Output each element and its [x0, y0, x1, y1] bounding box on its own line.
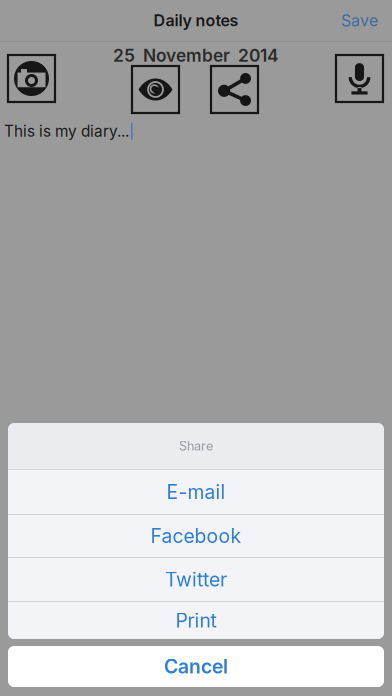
button[interactable]: Twitter [8, 558, 384, 601]
staticText: 25 November 2014 [113, 45, 279, 66]
button[interactable]: Voice memo [336, 55, 383, 102]
staticText: E-mail [166, 480, 225, 504]
staticText: This is my diary... [4, 122, 129, 141]
staticText: Facebook [150, 524, 241, 548]
button[interactable]: Save [327, 0, 392, 41]
staticText: Share [179, 438, 213, 454]
button[interactable]: Facebook [8, 515, 384, 557]
button[interactable]: Cancel [8, 646, 384, 687]
button[interactable]: Preview note [132, 66, 179, 113]
staticText: Cancel [164, 655, 228, 678]
button[interactable]: Share [211, 66, 258, 113]
staticText: Twitter [165, 568, 227, 591]
staticText: Daily notes [153, 11, 238, 30]
staticText: Save [341, 11, 378, 30]
button[interactable]: Camera [8, 55, 55, 102]
button[interactable]: E-mail [8, 470, 384, 514]
staticText: Print [175, 609, 216, 632]
button[interactable]: Print [8, 602, 384, 639]
